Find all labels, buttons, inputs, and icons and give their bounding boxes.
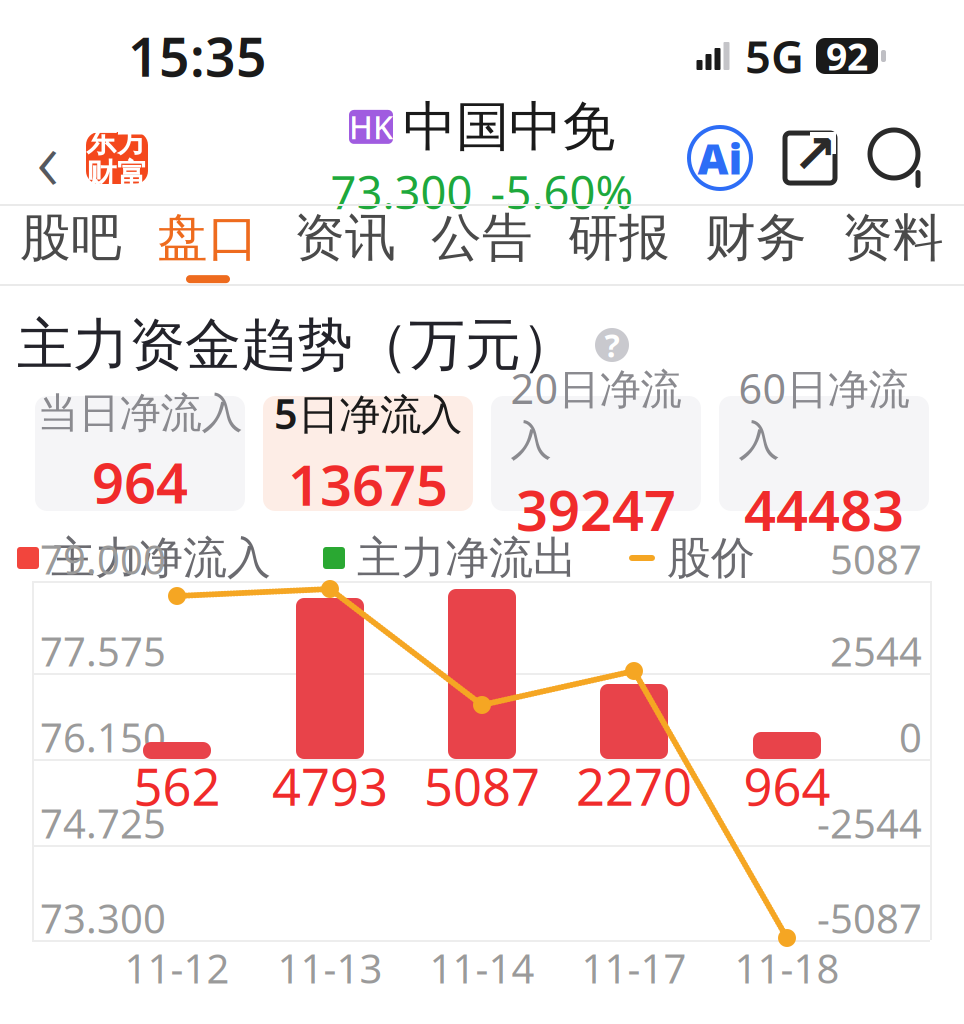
staticText: -2544 [817, 796, 922, 849]
staticText: 20日净流入 [510, 360, 681, 466]
staticText: 公告 [431, 207, 533, 269]
staticText: HK [349, 106, 393, 148]
staticText: 76.150 [40, 710, 166, 763]
button[interactable]: Back [22, 120, 74, 196]
button[interactable]: 当日净流入 [35, 396, 245, 511]
staticText: 79.000 [40, 532, 166, 585]
button[interactable]: 盘口 [139, 206, 276, 284]
staticText: 11-18 [734, 941, 839, 994]
staticText: 研报 [568, 207, 670, 269]
button[interactable]: 资料 [824, 206, 961, 284]
staticText: 主力资金趋势（万元） [17, 311, 577, 379]
button[interactable]: Share [774, 122, 846, 194]
staticText: 0 [899, 710, 922, 763]
button[interactable]: Help [591, 324, 633, 366]
staticText: 11-13 [277, 941, 382, 994]
staticText: 11-17 [581, 941, 686, 994]
staticText: 股吧 [20, 207, 122, 269]
staticText: 5087 [830, 532, 922, 585]
staticText: 资讯 [294, 207, 396, 269]
staticText: 中国中免 [403, 94, 615, 160]
staticText: ↗ [792, 124, 837, 184]
staticText: 2270 [576, 752, 692, 820]
staticText: 15:35 [128, 21, 267, 91]
staticText: 39247 [516, 472, 676, 546]
staticText: 73.300 [330, 162, 472, 222]
staticText: 资料 [842, 207, 944, 269]
staticText: 5日净流入 [274, 386, 462, 441]
staticText: 74.725 [40, 796, 166, 849]
staticText: 562 [133, 752, 220, 820]
staticText: 主力净流出 [357, 531, 577, 585]
staticText: 主力净流入 [51, 531, 271, 585]
button[interactable]: 60日净流入 [719, 396, 929, 511]
staticText: 当日净流入 [37, 388, 242, 439]
button[interactable]: East Money [86, 132, 148, 184]
staticText: -5087 [817, 891, 922, 944]
staticText: 73.300 [40, 891, 166, 944]
staticText: 11-12 [124, 941, 229, 994]
staticText: 财务 [705, 207, 807, 269]
staticText: Ai [697, 130, 742, 186]
staticText: 13675 [288, 447, 448, 521]
staticText: 77.575 [40, 624, 166, 677]
button[interactable]: 研报 [550, 206, 687, 284]
staticText: 5087 [424, 752, 540, 820]
button[interactable]: AI assistant [684, 122, 756, 194]
staticText: ? [604, 324, 619, 366]
button[interactable]: 财务 [687, 206, 824, 284]
button[interactable]: Search [862, 122, 934, 194]
staticText: 964 [92, 445, 188, 519]
button[interactable]: 20日净流入 [491, 396, 701, 511]
staticText: 964 [743, 752, 830, 820]
staticText: 92 [826, 31, 868, 81]
staticText: 4793 [272, 752, 388, 820]
staticText: 东方 [86, 122, 148, 160]
staticText: 股价 [667, 531, 755, 585]
staticText: 盘口 [157, 207, 259, 269]
staticText: 财富 [86, 156, 148, 194]
staticText: ‹ [36, 101, 59, 215]
staticText: 2544 [830, 624, 922, 677]
button[interactable]: 资讯 [276, 206, 413, 284]
button[interactable]: 公告 [413, 206, 550, 284]
staticText: 60日净流入 [738, 360, 909, 466]
staticText: 44483 [744, 472, 904, 546]
staticText: 11-14 [429, 941, 534, 994]
staticText: -5.60% [490, 162, 633, 222]
button[interactable]: 股吧 [2, 206, 139, 284]
staticText: 5G [745, 26, 804, 86]
button[interactable]: 5日净流入 [263, 396, 473, 511]
